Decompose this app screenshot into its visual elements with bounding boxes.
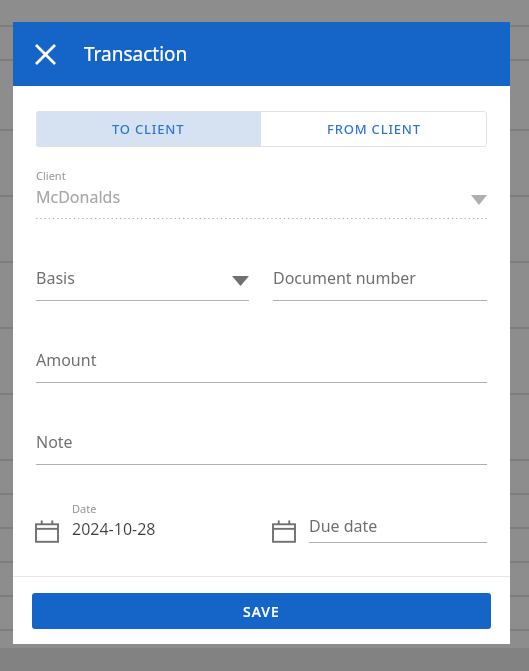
- staticText: Due date: [309, 515, 378, 537]
- staticText: Document number: [273, 267, 416, 289]
- button[interactable]: Basis: [36, 267, 249, 301]
- staticText: SAVE: [243, 602, 280, 621]
- staticText: Date: [72, 501, 97, 516]
- staticText: Note: [36, 431, 73, 453]
- button[interactable]: Due date: [273, 515, 487, 543]
- button[interactable]: Amount: [36, 349, 487, 383]
- button[interactable]: Document number: [273, 267, 487, 301]
- staticText: Basis: [36, 267, 75, 289]
- button[interactable]: FROM CLIENT: [261, 111, 487, 147]
- staticText: TO CLIENT: [112, 120, 185, 138]
- button[interactable]: SAVE: [32, 593, 491, 629]
- button[interactable]: TO CLIENT: [36, 111, 261, 147]
- staticText: Amount: [36, 349, 97, 371]
- staticText: Client: [36, 168, 66, 183]
- button[interactable]: Date: [36, 501, 249, 543]
- button[interactable]: Close: [24, 33, 66, 75]
- staticText: Transaction: [84, 41, 188, 67]
- button[interactable]: Note: [36, 431, 487, 465]
- staticText: McDonalds: [36, 186, 121, 208]
- staticText: FROM CLIENT: [327, 120, 421, 138]
- button[interactable]: Client: [36, 168, 487, 220]
- staticText: 2024-10-28: [72, 518, 156, 540]
